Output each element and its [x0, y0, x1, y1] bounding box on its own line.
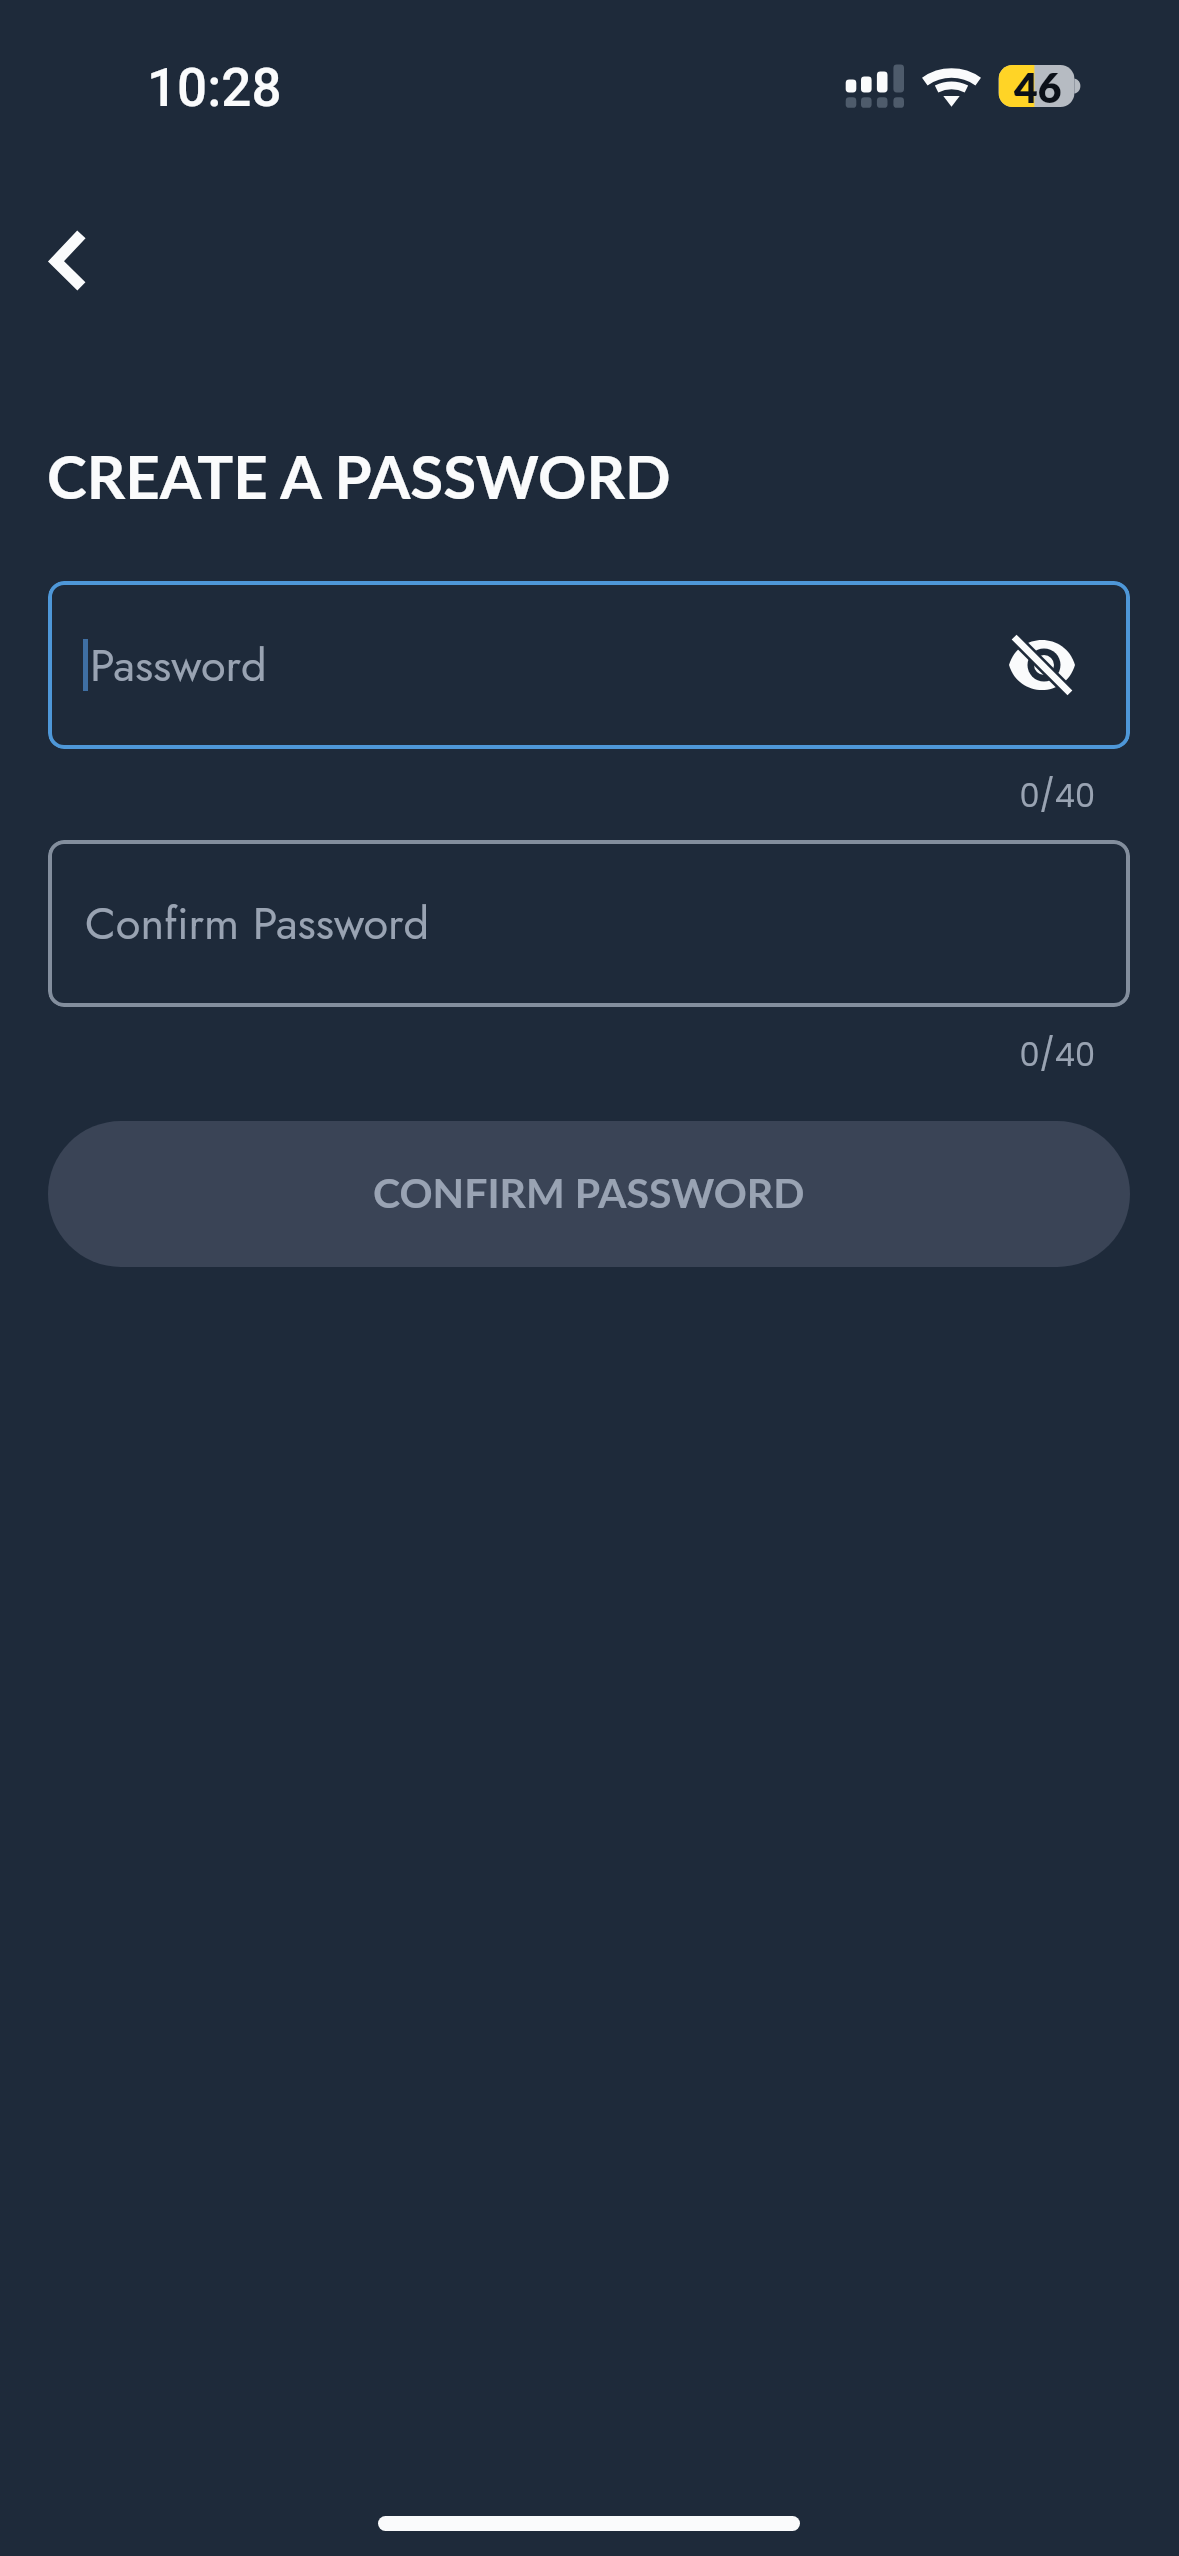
- staticText: 46: [1014, 63, 1062, 112]
- button[interactable]: Back: [18, 215, 110, 307]
- staticText: CREATE A PASSWORD: [47, 440, 671, 512]
- button[interactable]: Password: [48, 581, 1130, 749]
- button[interactable]: Show password: [992, 615, 1092, 715]
- staticText: Confirm Password: [85, 891, 430, 956]
- button[interactable]: CONFIRM PASSWORD: [48, 1121, 1130, 1267]
- staticText: CONFIRM PASSWORD: [373, 1168, 805, 1217]
- button[interactable]: Confirm Password: [48, 840, 1130, 1007]
- staticText: Password: [90, 633, 267, 698]
- staticText: 10:28: [147, 57, 282, 119]
- staticText: 0/40: [0, 773, 1095, 818]
- staticText: 0/40: [0, 1032, 1095, 1077]
